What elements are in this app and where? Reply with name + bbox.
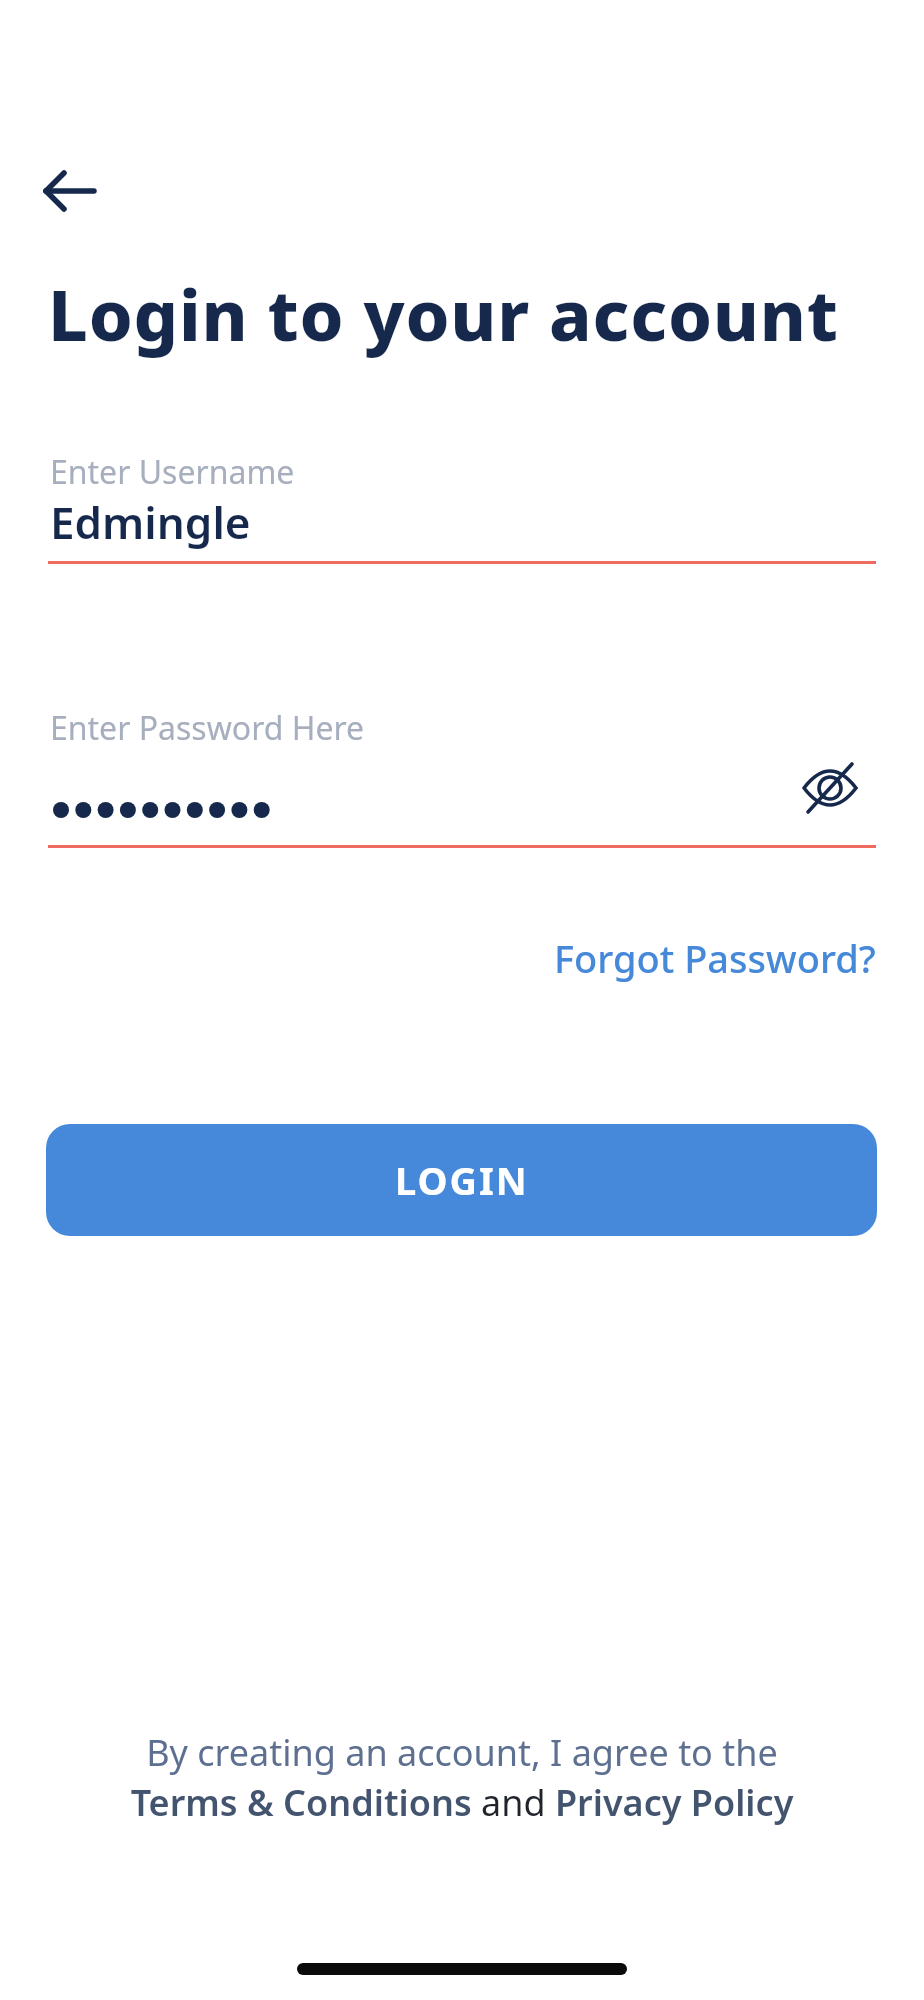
staticText: Login to your account [48,266,839,361]
button[interactable]: Terms & Conditions and Privacy Policy [0,1778,924,1827]
button[interactable]: Forgot Password? [554,932,876,984]
staticText: Edmingle [50,492,251,552]
button[interactable]: LOGIN [46,1124,877,1236]
staticText: LOGIN [395,1154,529,1206]
button[interactable] [30,152,110,230]
staticText: Enter Username [50,450,295,494]
staticText: Enter Password Here [50,706,365,750]
staticText: By creating an account, I agree to the [0,1728,924,1777]
button[interactable] [790,752,870,824]
